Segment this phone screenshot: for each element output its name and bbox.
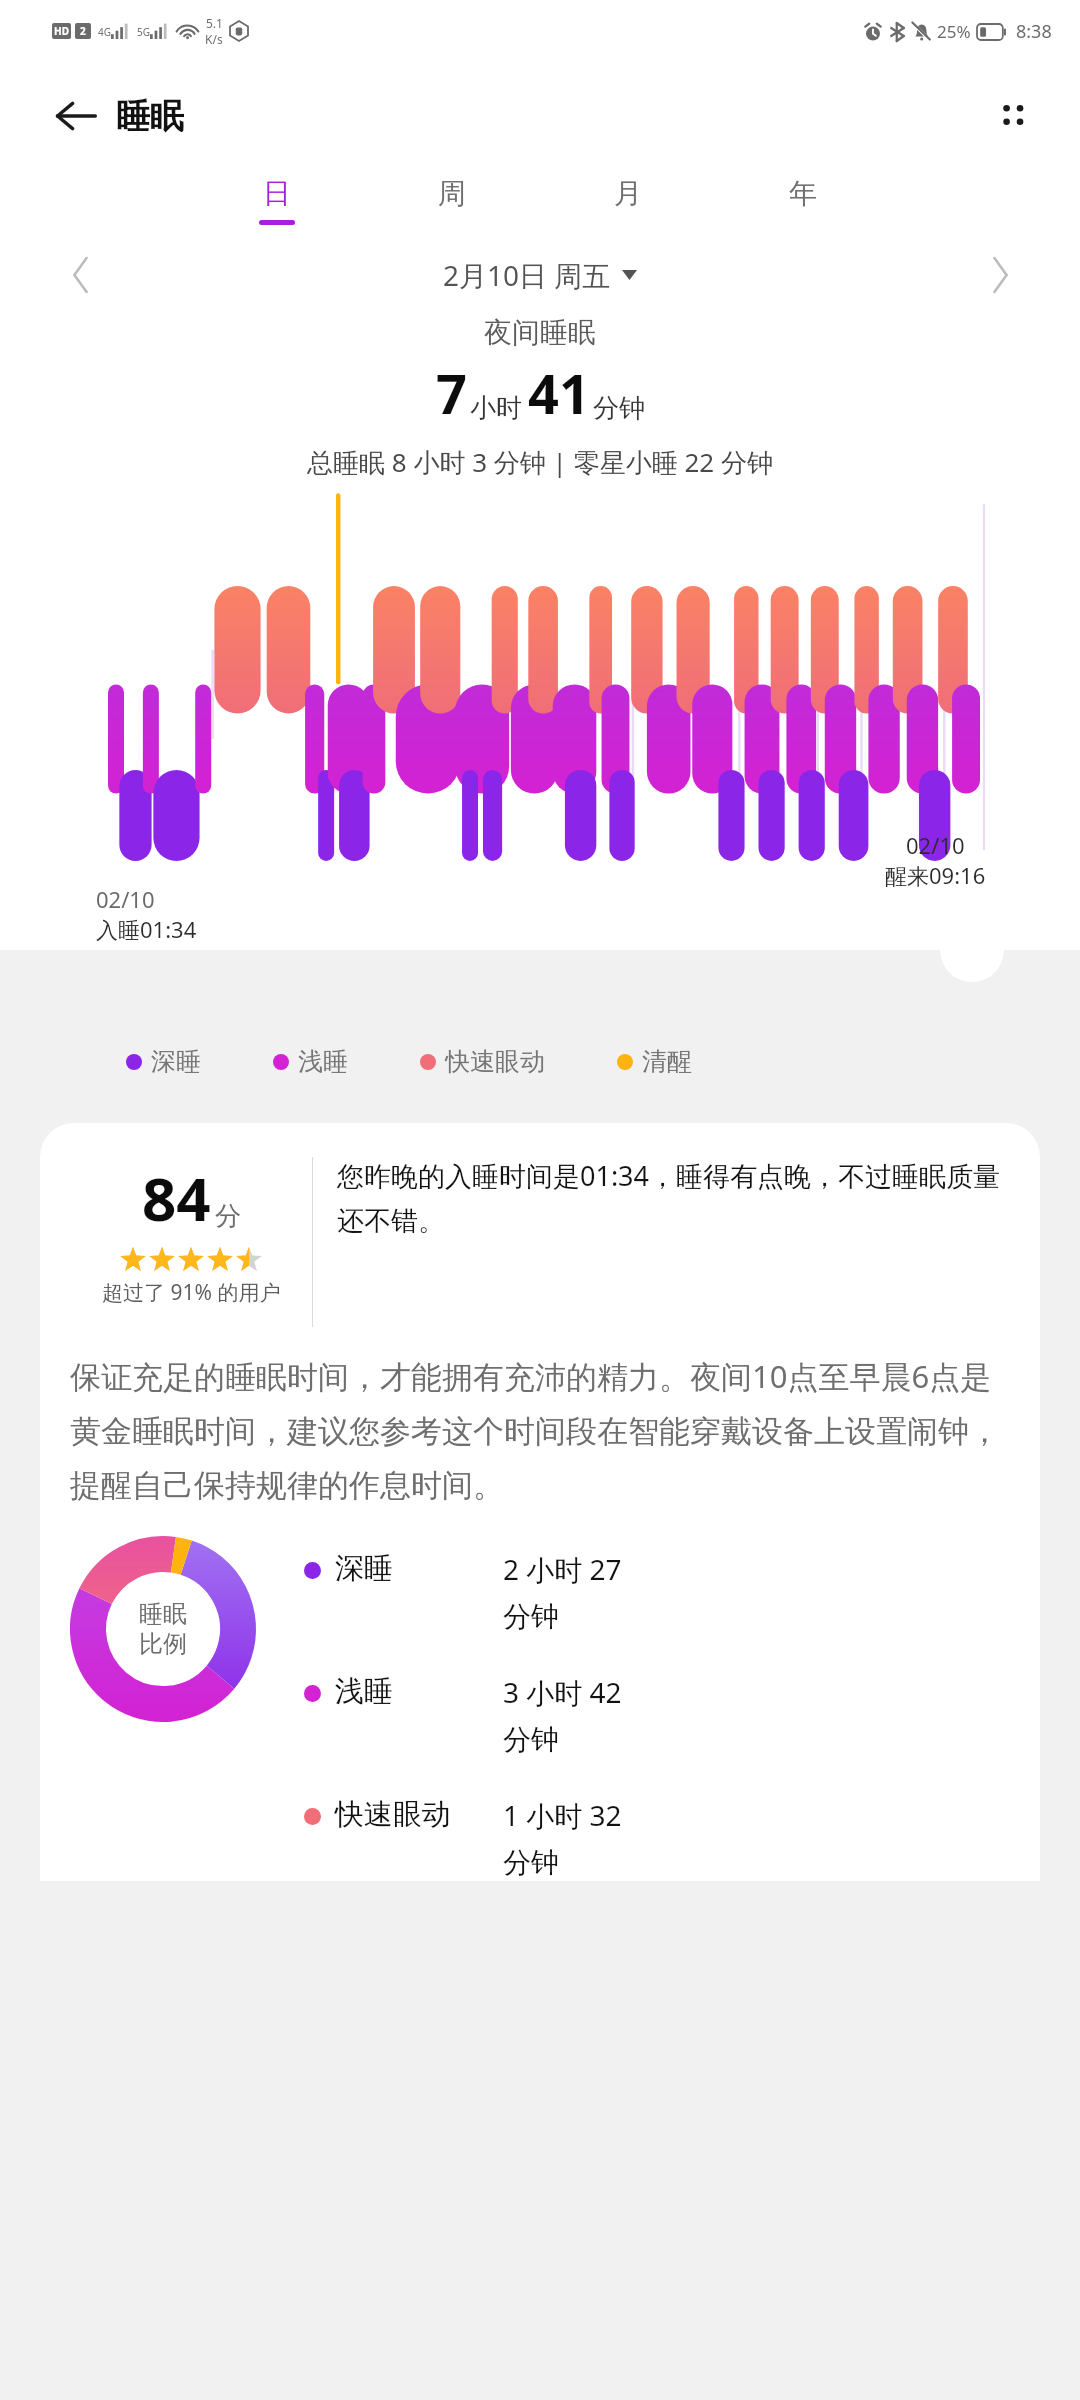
staticText: 清醒: [642, 1046, 692, 1077]
button[interactable]: 清醒: [617, 1046, 692, 1077]
staticText: 8:38: [1016, 19, 1052, 44]
staticText: 夜间睡眠: [484, 315, 596, 350]
button[interactable]: 年: [774, 170, 832, 231]
staticText: 周: [438, 176, 466, 211]
staticText: 深睡: [335, 1550, 503, 1587]
staticText: K/s: [205, 31, 223, 47]
staticText: 深睡: [151, 1046, 201, 1077]
button[interactable]: Back: [46, 86, 106, 146]
staticText: 1 小时 32 分钟: [503, 1796, 651, 1881]
staticText: 25%: [937, 20, 971, 43]
staticText: 浅睡: [298, 1046, 348, 1077]
staticText: 快速眼动: [335, 1796, 503, 1833]
button[interactable]: Previous day: [54, 249, 106, 301]
staticText: 超过了 91% 的用户: [102, 1278, 281, 1307]
button[interactable]: 浅睡: [304, 1673, 1010, 1758]
staticText: 您昨晚的入睡时间是01:34，睡得有点晚，不过睡眠质量还不错。: [337, 1157, 1010, 1238]
staticText: 入睡01:34: [96, 914, 197, 944]
staticText: 浅睡: [335, 1673, 503, 1710]
staticText: 02/10: [96, 884, 155, 914]
staticText: 02/10: [906, 830, 965, 860]
staticText: 2: [80, 24, 86, 38]
button[interactable]: 周: [423, 170, 481, 231]
button[interactable]: 日: [248, 170, 306, 231]
button[interactable]: 2月10日 周五: [106, 256, 974, 294]
staticText: HD: [54, 24, 69, 38]
staticText: 比例: [139, 1629, 187, 1659]
staticText: 月: [614, 176, 642, 211]
button[interactable]: 浅睡: [273, 1046, 348, 1077]
staticText: 快速眼动: [445, 1046, 545, 1077]
staticText: 2月10日 周五: [443, 256, 611, 294]
button[interactable]: Next day: [974, 249, 1026, 301]
staticText: 睡眠: [139, 1599, 187, 1629]
staticText: 醒来09:16: [885, 860, 986, 890]
staticText: 保证充足的睡眠时间，才能拥有充沛的精力。夜间10点至早晨6点是黄金睡眠时间，建议…: [70, 1355, 1010, 1506]
staticText: 小时: [470, 392, 522, 425]
button[interactable]: 快速眼动: [420, 1046, 545, 1077]
staticText: 41: [528, 356, 590, 430]
staticText: 5.1: [206, 15, 223, 31]
staticText: 分钟: [593, 392, 645, 425]
staticText: 5G: [137, 25, 150, 39]
button[interactable]: More options: [984, 87, 1042, 145]
staticText: 4G: [98, 25, 111, 39]
button[interactable]: Expand chart: [940, 918, 1004, 982]
button[interactable]: 快速眼动: [304, 1796, 1010, 1881]
button[interactable]: 月: [599, 170, 657, 231]
staticText: 总睡眠 8 小时 3 分钟 | 零星小睡 22 分钟: [307, 444, 773, 480]
button[interactable]: 深睡: [304, 1550, 1010, 1635]
staticText: 睡眠: [116, 95, 184, 138]
staticText: 84: [142, 1157, 211, 1239]
button[interactable]: 深睡: [126, 1046, 201, 1077]
staticText: 2 小时 27 分钟: [503, 1550, 651, 1635]
staticText: 3 小时 42 分钟: [503, 1673, 651, 1758]
staticText: 日: [263, 176, 291, 211]
staticText: 7: [436, 356, 467, 430]
staticText: 分: [215, 1200, 241, 1233]
staticText: 年: [789, 176, 817, 211]
